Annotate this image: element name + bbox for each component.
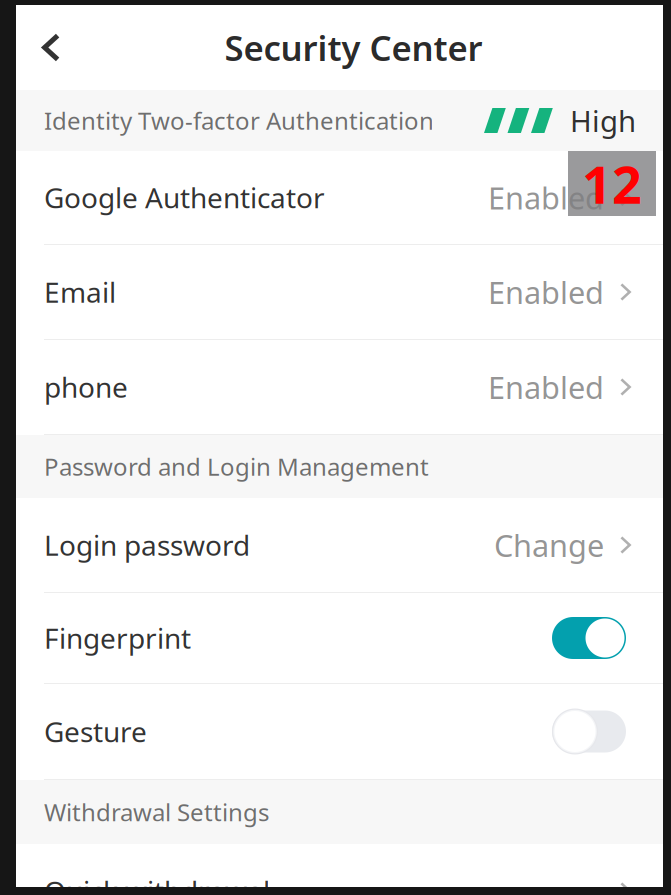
button[interactable]: Login password [16, 498, 663, 593]
button[interactable]: Back [16, 5, 84, 89]
staticText: Google Authenticator [44, 179, 325, 216]
staticText: Enabled [488, 367, 604, 407]
staticText: Gesture [44, 713, 147, 750]
staticText: Security Center [224, 24, 482, 70]
staticText: Email [44, 273, 116, 311]
staticText: Fingerprint [44, 619, 191, 657]
staticText: Password and Login Management [44, 451, 429, 482]
button[interactable]: Google Authenticator [16, 151, 663, 245]
staticText: Withdrawal Settings [44, 796, 269, 828]
staticText: Identity Two-factor Authentication [44, 105, 434, 136]
button[interactable]: Quick withdrawal [16, 844, 663, 895]
staticText: phone [44, 368, 128, 406]
button[interactable]: Email [16, 245, 663, 340]
staticText: High [570, 101, 636, 140]
staticText: Enabled [488, 177, 604, 218]
button[interactable]: phone [16, 340, 663, 435]
staticText: Login password [44, 526, 250, 564]
staticText: Quick withdrawal [44, 872, 270, 895]
staticText: Change [494, 525, 604, 565]
staticText: 12 [582, 149, 642, 218]
button[interactable]: Gesture [16, 684, 663, 780]
staticText: Enabled [488, 272, 604, 312]
button[interactable]: Fingerprint [16, 593, 663, 684]
